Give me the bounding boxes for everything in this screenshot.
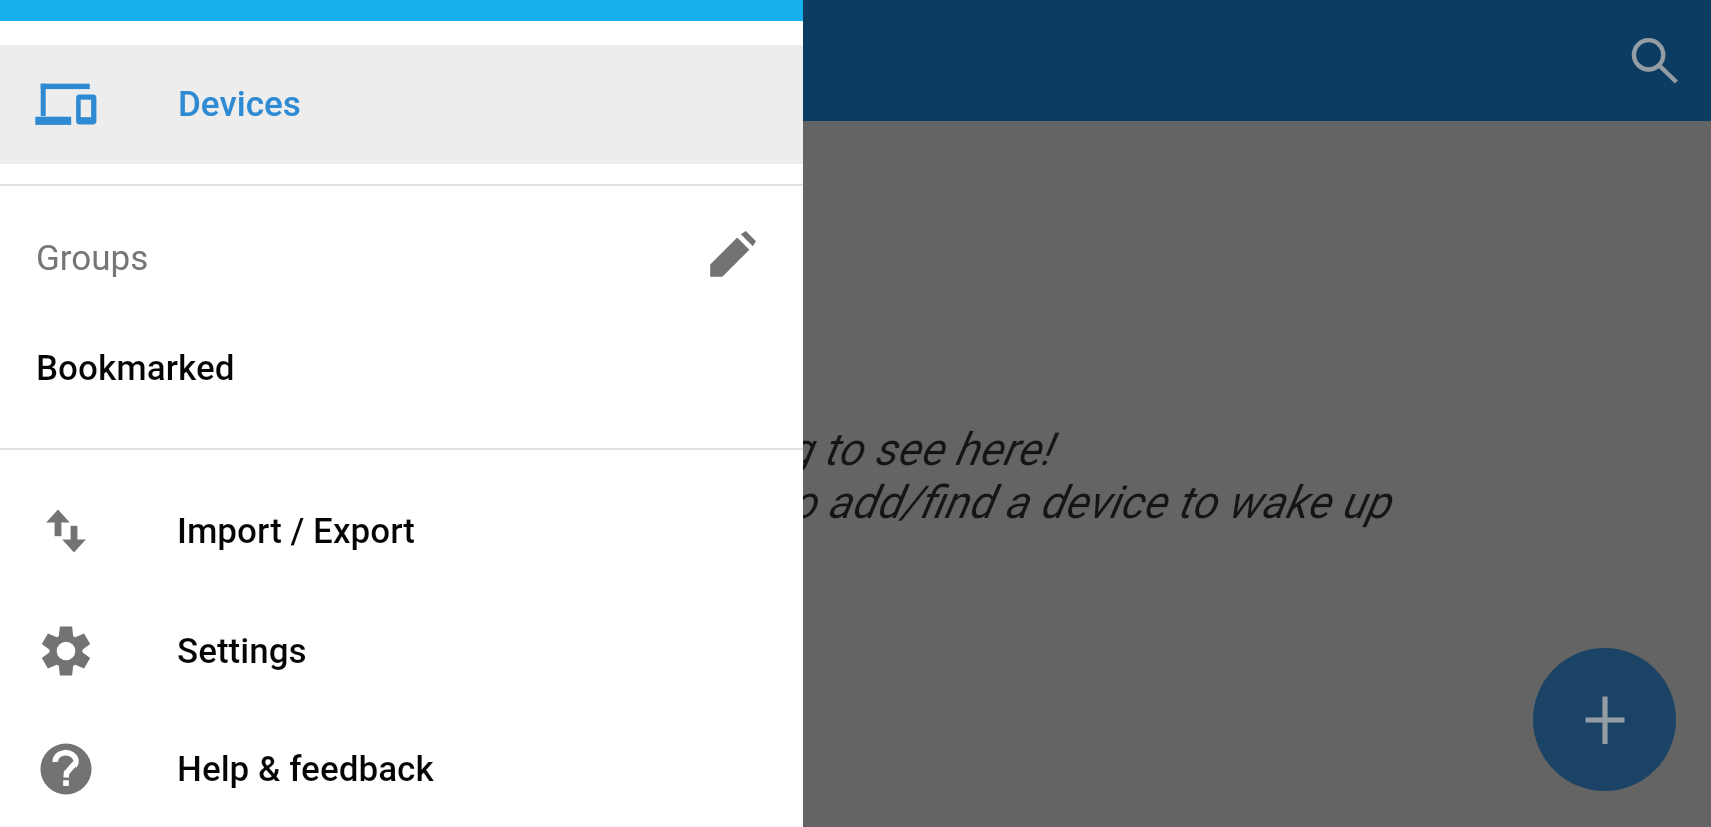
staticText: Bookmarked xyxy=(36,348,235,389)
staticText: Groups xyxy=(36,238,149,279)
button[interactable]: Add device xyxy=(1533,648,1676,791)
staticText: Help & feedback xyxy=(177,749,434,790)
staticText: Settings xyxy=(177,631,307,672)
button[interactable]: Search xyxy=(1618,23,1694,99)
button[interactable]: Devices xyxy=(0,45,803,164)
button[interactable]: Settings xyxy=(0,591,803,711)
staticText: Nothing to see here! xyxy=(657,423,1052,476)
button[interactable]: Edit groups xyxy=(687,212,779,304)
button[interactable]: Help & feedback xyxy=(0,711,803,827)
staticText: Tap + to add/find a device to wake up xyxy=(657,476,1391,529)
button[interactable]: Import / Export xyxy=(0,471,803,591)
button[interactable]: Bookmarked xyxy=(0,313,803,423)
staticText: Import / Export xyxy=(177,511,415,552)
staticText: Devices xyxy=(178,84,301,125)
